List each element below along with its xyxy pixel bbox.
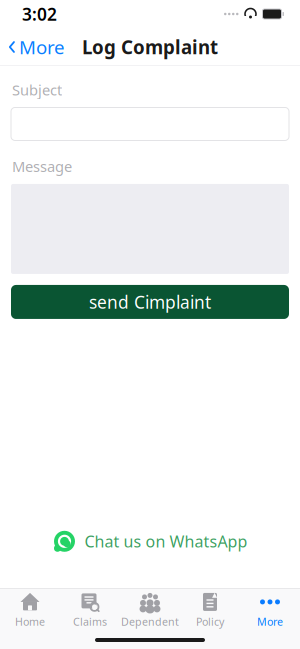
button[interactable]: Policy — [180, 589, 240, 632]
button[interactable]: Dependent — [120, 589, 180, 632]
staticText: Dependent — [121, 614, 179, 629]
button[interactable]: Claims — [60, 589, 120, 632]
staticText: Chat us on WhatsApp — [84, 531, 247, 552]
staticText: send Cimplaint — [89, 290, 211, 313]
staticText: Message — [12, 156, 72, 176]
staticText: More — [257, 614, 283, 629]
button[interactable]: More — [0, 29, 73, 65]
button[interactable]: send Cimplaint — [11, 285, 289, 319]
staticText: Log Complaint — [82, 35, 218, 59]
staticText: Policy — [196, 614, 224, 629]
button[interactable]: More — [240, 589, 300, 632]
staticText: Home — [15, 614, 45, 629]
button[interactable]: Chat us on WhatsApp — [42, 524, 257, 558]
staticText: 3:02 — [22, 2, 57, 25]
button[interactable]: Home — [0, 589, 60, 632]
staticText: More — [19, 35, 65, 59]
staticText: Subject — [12, 80, 62, 99]
staticText: Claims — [73, 614, 107, 629]
